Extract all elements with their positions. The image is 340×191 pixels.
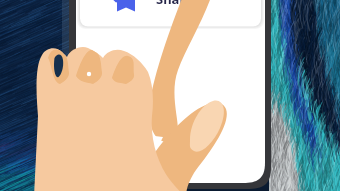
button[interactable]: Share	[0, 0, 340, 191]
